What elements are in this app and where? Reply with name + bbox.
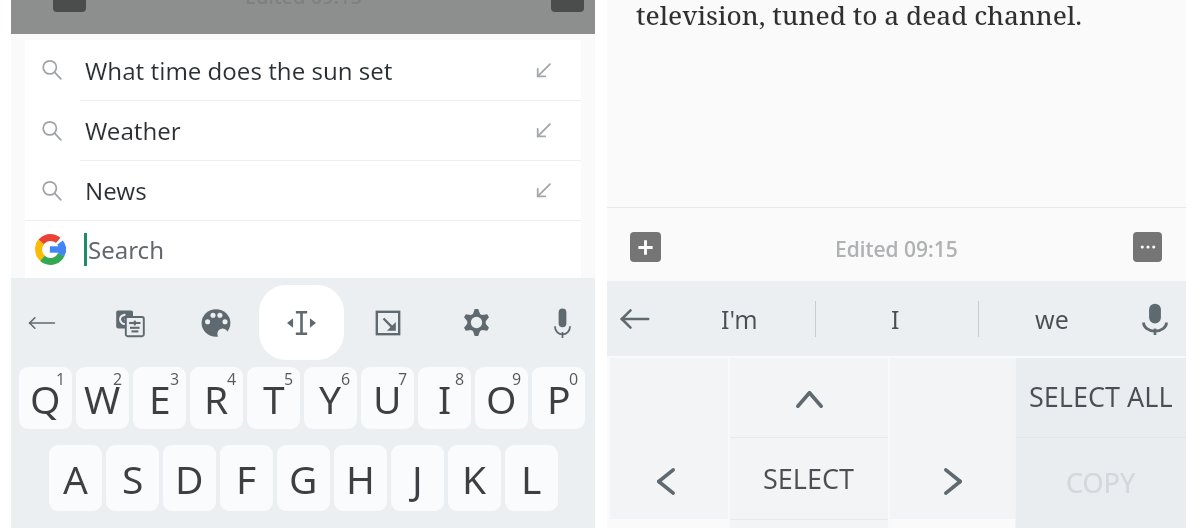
staticText: D: [175, 452, 204, 505]
staticText: Edited 09:15: [245, 0, 362, 10]
staticText: Search: [88, 233, 164, 266]
staticText: SELECT ALL: [1029, 378, 1173, 415]
staticText: 9: [512, 368, 522, 390]
staticText: television, tuned to a dead channel.: [636, 0, 1083, 32]
staticText: 6: [341, 368, 351, 390]
staticText: 7: [398, 368, 408, 390]
button[interactable]: Q: [19, 367, 72, 429]
staticText: U: [373, 372, 402, 425]
staticText: News: [85, 174, 147, 207]
staticText: T: [263, 372, 285, 425]
staticText: Weather: [85, 114, 181, 147]
staticText: we: [1035, 302, 1069, 336]
button[interactable]: Search: [25, 221, 581, 278]
button[interactable]: Voice input: [534, 278, 590, 365]
button[interactable]: Weather: [25, 101, 581, 160]
staticText: 3: [170, 368, 180, 390]
button[interactable]: E: [133, 367, 186, 429]
button[interactable]: J: [391, 445, 444, 511]
staticText: 2: [113, 368, 123, 390]
button[interactable]: G: [277, 445, 330, 511]
button[interactable]: T: [247, 367, 300, 429]
staticText: 1: [56, 368, 66, 390]
button[interactable]: Add: [630, 232, 661, 262]
button[interactable]: K: [448, 445, 501, 511]
button[interactable]: Move left: [610, 437, 729, 519]
button[interactable]: Move right: [889, 437, 1016, 519]
staticText: K: [462, 452, 487, 505]
button[interactable]: H: [334, 445, 387, 511]
button[interactable]: More options: [1133, 232, 1162, 262]
staticText: 0: [569, 368, 579, 390]
staticText: H: [346, 452, 375, 505]
staticText: G: [289, 452, 318, 505]
button[interactable]: A: [49, 445, 102, 511]
button[interactable]: R: [190, 367, 243, 429]
staticText: 5: [284, 368, 294, 390]
button[interactable]: I'm: [677, 281, 801, 356]
staticText: O: [486, 372, 517, 425]
staticText: 4: [227, 368, 237, 390]
button[interactable]: Themes: [188, 278, 244, 365]
staticText: SELECT: [763, 460, 855, 497]
staticText: Edited 09:15: [835, 235, 958, 264]
button[interactable]: COPY: [1016, 438, 1186, 528]
staticText: R: [204, 372, 229, 425]
staticText: F: [236, 452, 257, 505]
button[interactable]: Move up: [729, 356, 889, 437]
staticText: I'm: [721, 302, 758, 336]
staticText: L: [521, 452, 542, 505]
button[interactable]: Translate: [102, 278, 158, 365]
staticText: COPY: [1066, 464, 1136, 501]
button[interactable]: I: [418, 367, 471, 429]
button[interactable]: P: [532, 367, 585, 429]
staticText: E: [149, 372, 171, 425]
button[interactable]: S: [106, 445, 159, 511]
button[interactable]: Move cursor: [273, 278, 329, 365]
button[interactable]: Voice input: [1127, 281, 1183, 356]
button[interactable]: F: [220, 445, 273, 511]
button[interactable]: O: [475, 367, 528, 429]
button[interactable]: D: [163, 445, 216, 511]
button[interactable]: What time does the sun set: [25, 40, 581, 100]
button[interactable]: SELECT ALL: [1016, 356, 1186, 437]
button[interactable]: L: [505, 445, 558, 511]
button[interactable]: Y: [304, 367, 357, 429]
staticText: 8: [455, 368, 465, 390]
staticText: S: [122, 452, 144, 505]
button[interactable]: I: [833, 281, 957, 356]
staticText: Y: [319, 372, 342, 425]
staticText: I: [891, 302, 900, 336]
button[interactable]: SELECT: [729, 438, 889, 519]
staticText: A: [63, 452, 88, 505]
button[interactable]: Settings: [448, 278, 504, 365]
staticText: P: [547, 372, 571, 425]
staticText: What time does the sun set: [85, 54, 393, 87]
button[interactable]: Resize keyboard: [360, 278, 416, 365]
button[interactable]: News: [25, 161, 581, 220]
button[interactable]: W: [76, 367, 129, 429]
staticText: Q: [30, 372, 61, 425]
staticText: J: [412, 452, 423, 505]
staticText: W: [84, 372, 121, 425]
button[interactable]: Back: [14, 278, 70, 365]
button[interactable]: Back: [607, 281, 663, 356]
staticText: I: [438, 372, 452, 425]
button[interactable]: U: [361, 367, 414, 429]
button[interactable]: we: [990, 281, 1114, 356]
